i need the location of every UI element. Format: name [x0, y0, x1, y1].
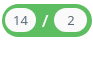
staticText: 14: [13, 11, 28, 29]
staticText: 2: [67, 11, 75, 29]
button[interactable]: 14: [5, 8, 36, 32]
staticText: /: [42, 9, 49, 32]
button[interactable]: 2: [54, 8, 87, 32]
button[interactable]: Vote counter: [2, 4, 92, 37]
